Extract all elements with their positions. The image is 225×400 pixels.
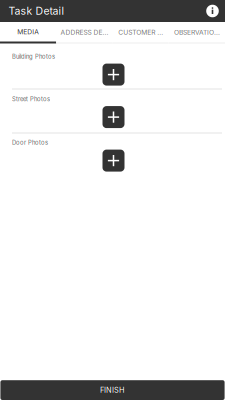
staticText: Building Photos bbox=[12, 53, 55, 60]
button[interactable]: Task information bbox=[201, 0, 223, 22]
button[interactable]: ADDRESS DE... bbox=[56, 22, 112, 43]
button[interactable]: CUSTOMER ... bbox=[112, 22, 169, 43]
staticText: Street Photos bbox=[12, 95, 50, 103]
staticText: OBSERVATIO... bbox=[174, 28, 220, 36]
staticText: CUSTOMER ... bbox=[118, 28, 163, 36]
button[interactable]: Add Street Photos bbox=[102, 106, 124, 128]
button[interactable]: MEDIA bbox=[0, 22, 56, 43]
staticText: Task Detail bbox=[8, 5, 64, 17]
staticText: MEDIA bbox=[17, 28, 39, 36]
button[interactable]: FINISH bbox=[0, 380, 225, 400]
button[interactable]: Add Door Photos bbox=[102, 150, 124, 172]
staticText: ADDRESS DE... bbox=[60, 28, 108, 36]
staticText: FINISH bbox=[100, 386, 125, 395]
button[interactable]: Add Building Photos bbox=[102, 64, 124, 86]
button[interactable]: OBSERVATIO... bbox=[169, 22, 225, 43]
staticText: Door Photos bbox=[12, 139, 48, 146]
